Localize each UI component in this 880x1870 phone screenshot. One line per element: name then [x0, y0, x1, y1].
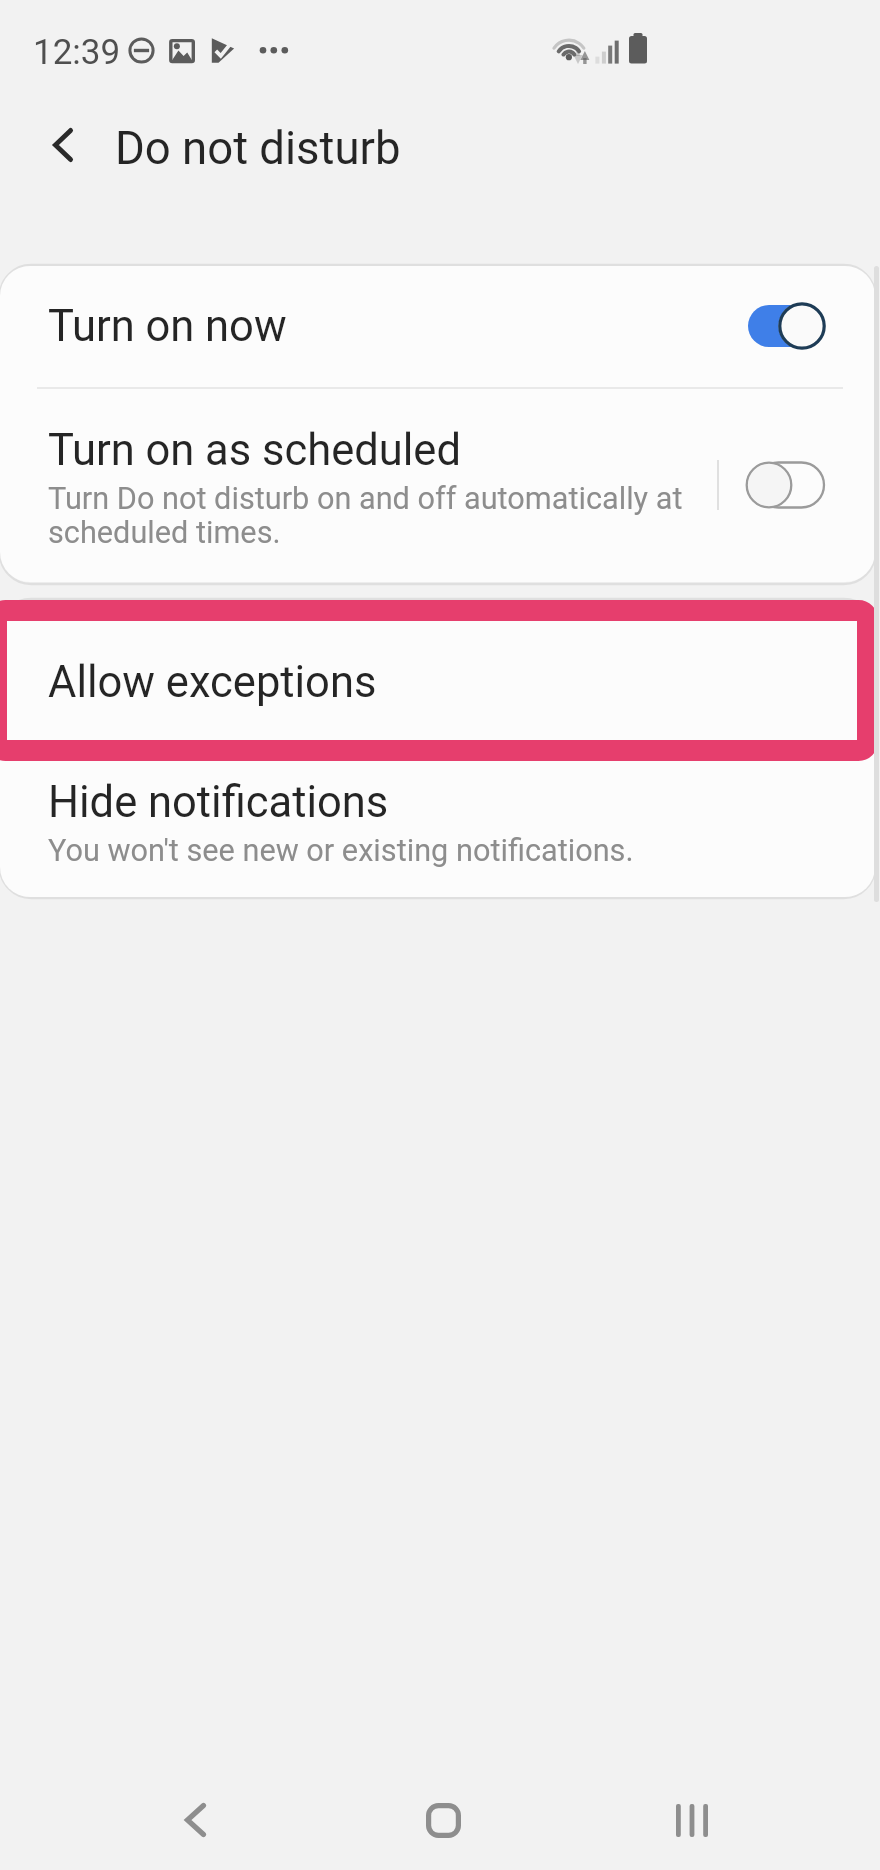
staticText: 12:39	[33, 32, 121, 73]
button[interactable]: Recent apps	[632, 1760, 752, 1870]
staticText: You won't see new or existing notificati…	[48, 834, 634, 868]
button[interactable]: Turn on as scheduled	[48, 425, 708, 550]
staticText: Turn on now	[48, 301, 287, 352]
button[interactable]: Turn on as scheduled	[737, 430, 847, 540]
button[interactable]: Allow exceptions	[0, 600, 875, 761]
button[interactable]: Navigate up	[20, 105, 106, 191]
button[interactable]: Turn on now	[0, 266, 875, 387]
button[interactable]: Back	[135, 1760, 255, 1870]
staticText: Do not disturb	[115, 122, 401, 175]
button[interactable]: Home	[383, 1760, 503, 1870]
staticText: Turn on as scheduled	[48, 425, 461, 476]
staticText: Turn Do not disturb on and off automatic…	[48, 482, 708, 550]
button[interactable]: Hide notifications	[0, 761, 875, 897]
staticText: Hide notifications	[48, 777, 389, 828]
staticText: Allow exceptions	[48, 657, 377, 708]
